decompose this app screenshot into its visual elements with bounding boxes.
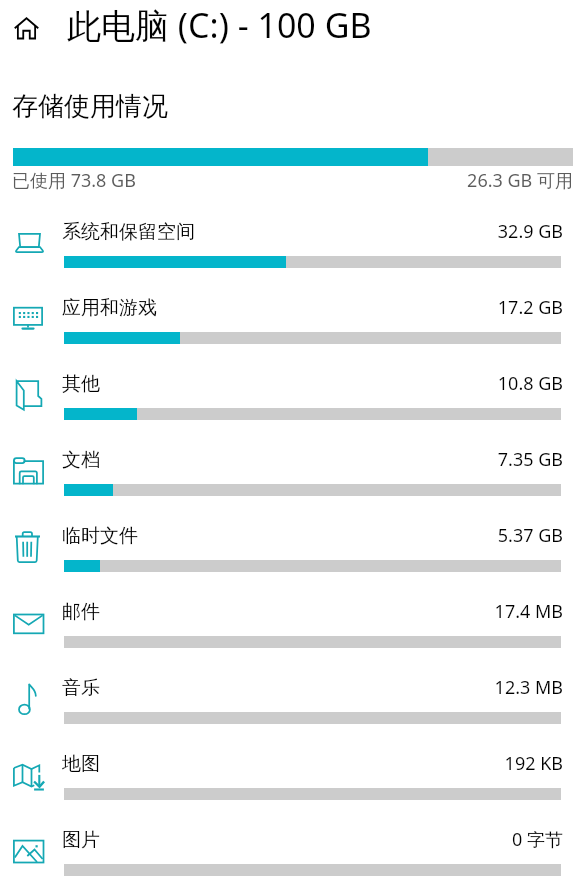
staticText: 地图 xyxy=(62,752,100,776)
button[interactable]: 图片 xyxy=(0,820,583,888)
staticText: 7.35 GB xyxy=(62,447,563,472)
staticText: 邮件 xyxy=(62,600,100,624)
staticText: 已使用 73.8 GB xyxy=(12,168,136,193)
staticText: 192 KB xyxy=(62,751,563,776)
staticText: 存储使用情况 xyxy=(12,90,168,123)
button[interactable]: 其他 xyxy=(0,364,583,432)
staticText: 17.2 GB xyxy=(62,295,563,320)
staticText: 临时文件 xyxy=(62,524,138,548)
staticText: 图片 xyxy=(62,828,100,852)
button[interactable]: 临时文件 xyxy=(0,516,583,584)
button[interactable]: 系统和保留空间 xyxy=(0,212,583,280)
button[interactable]: 文档 xyxy=(0,440,583,508)
staticText: 26.3 GB 可用 xyxy=(12,168,573,193)
staticText: 此电脑 (C:) - 100 GB xyxy=(67,2,372,48)
staticText: 32.9 GB xyxy=(62,219,563,244)
staticText: 应用和游戏 xyxy=(62,296,157,320)
staticText: 10.8 GB xyxy=(62,371,563,396)
staticText: 17.4 MB xyxy=(62,599,563,624)
staticText: 12.3 MB xyxy=(62,675,563,700)
button[interactable]: Home xyxy=(6,8,46,48)
staticText: 系统和保留空间 xyxy=(62,220,195,244)
staticText: 5.37 GB xyxy=(62,523,563,548)
button[interactable]: 应用和游戏 xyxy=(0,288,583,356)
staticText: 音乐 xyxy=(62,676,100,700)
staticText: 文档 xyxy=(62,448,100,472)
button[interactable]: 地图 xyxy=(0,744,583,812)
button[interactable]: 音乐 xyxy=(0,668,583,736)
staticText: 0 字节 xyxy=(62,827,563,852)
button[interactable]: 邮件 xyxy=(0,592,583,660)
staticText: 其他 xyxy=(62,372,100,396)
